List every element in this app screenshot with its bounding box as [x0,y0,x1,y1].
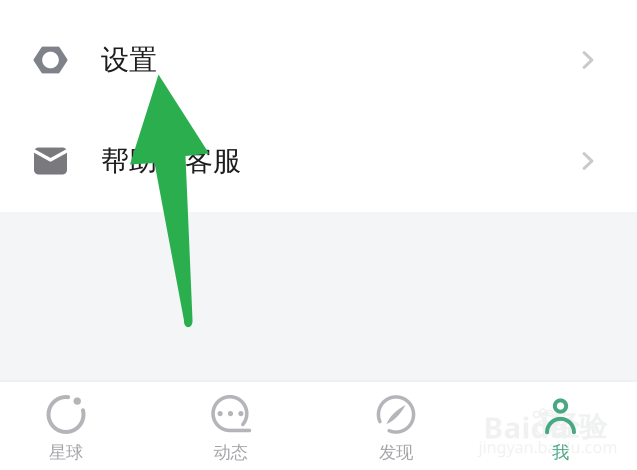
staticText: Baidu [483,407,568,446]
button[interactable]: 星球 [26,382,106,470]
staticText: 帮助与客服 [101,144,241,178]
button[interactable]: 我 [520,382,600,470]
staticText: 发现 [379,442,413,463]
staticText: jingyan.baidu.com [478,436,617,458]
staticText: 我 [552,442,569,463]
button[interactable]: 设置 [0,5,637,115]
button[interactable]: 发现 [356,382,436,470]
staticText: 经验 [551,410,607,444]
staticText: 动态 [213,442,247,463]
button[interactable]: 动态 [190,382,270,470]
button[interactable]: 帮助与客服 [0,110,637,212]
staticText: 星球 [49,442,83,463]
staticText: 设置 [101,43,157,77]
